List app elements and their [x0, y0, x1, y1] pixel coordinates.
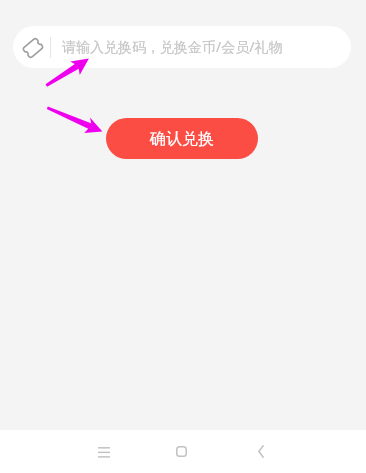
- button[interactable]: Recent apps: [85, 433, 122, 470]
- button[interactable]: 请输入兑换码，兑换金币/会员/礼物: [13, 26, 351, 68]
- button[interactable]: Back: [242, 433, 279, 470]
- button[interactable]: Home: [163, 433, 200, 470]
- button[interactable]: 确认兑换: [106, 118, 258, 159]
- staticText: 确认兑换: [150, 129, 214, 149]
- staticText: 请输入兑换码，兑换金币/会员/礼物: [62, 37, 283, 56]
